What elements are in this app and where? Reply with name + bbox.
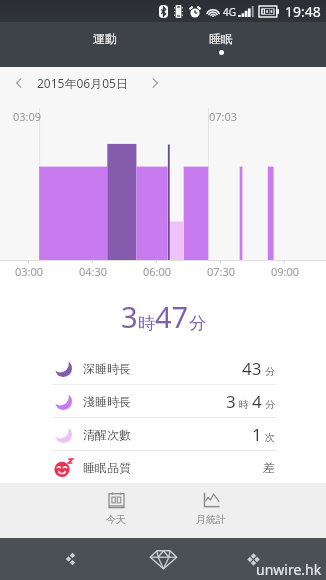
staticText: 分	[265, 398, 275, 411]
staticText: 今天	[106, 513, 126, 526]
staticText: 09:00	[271, 264, 300, 279]
staticText: 04:30	[79, 264, 108, 279]
button[interactable]: 運動	[47, 22, 163, 67]
staticText: 深睡時長	[83, 361, 131, 376]
staticText: 月統計	[196, 513, 226, 526]
staticText: 分	[189, 313, 206, 334]
staticText: unwire.hk	[256, 560, 322, 579]
staticText: 3	[226, 390, 236, 413]
staticText: 睡眠	[209, 31, 233, 46]
staticText: 淺睡時長	[83, 394, 131, 409]
staticText: 睡眠品質	[83, 460, 131, 475]
staticText: 47	[155, 297, 189, 336]
button[interactable]: Next day	[128, 67, 182, 98]
button[interactable]: 深睡時長	[0, 352, 326, 384]
staticText: 時	[239, 398, 249, 411]
button[interactable]: Previous day	[0, 67, 37, 98]
staticText: 4G	[223, 5, 236, 19]
staticText: 清醒次數	[83, 427, 131, 442]
button[interactable]: Back	[38, 538, 103, 580]
staticText: 43	[242, 357, 262, 380]
staticText: 03:09	[13, 109, 42, 124]
staticText: 1	[252, 423, 262, 446]
staticText: 03:00	[15, 264, 44, 279]
button[interactable]: 睡眠	[163, 22, 279, 67]
button[interactable]: 月統計	[163, 483, 258, 538]
staticText: 次	[265, 431, 275, 444]
button[interactable]: 淺睡時長	[0, 385, 326, 417]
staticText: 19:48	[285, 2, 321, 21]
staticText: 07:30	[207, 264, 236, 279]
staticText: 4	[252, 390, 262, 413]
staticText: 3	[121, 297, 138, 336]
button[interactable]: 今天	[68, 483, 163, 538]
button[interactable]: Recent apps	[221, 538, 286, 580]
staticText: 運動	[93, 31, 117, 46]
button[interactable]: 清醒次數	[0, 418, 326, 450]
staticText: 2015年06月05日	[37, 75, 128, 91]
button[interactable]: Home	[131, 538, 196, 580]
button[interactable]: 睡眠品質	[0, 451, 326, 483]
staticText: 時	[138, 313, 155, 334]
staticText: 06:00	[143, 264, 172, 279]
staticText: 差	[263, 460, 275, 475]
staticText: 07:03	[209, 109, 238, 124]
staticText: 分	[265, 365, 275, 378]
